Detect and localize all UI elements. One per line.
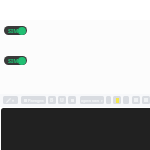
staticText: ▾ [101,99,103,102]
staticText: ▾ [12,98,15,103]
staticText: U [60,97,64,104]
button[interactable]: Align [132,96,140,104]
button[interactable]: Text size [106,96,111,104]
button[interactable]: Italic [68,96,76,104]
button[interactable]: Highlight [113,96,121,104]
staticText: SIM [8,57,19,64]
button[interactable]: List [142,96,150,104]
staticText: Paragra [28,98,44,103]
button[interactable]: Font [80,96,104,104]
button[interactable]: Text colour [123,96,129,104]
button[interactable]: SIM toggle [4,26,27,35]
staticText: open san [81,98,100,103]
button[interactable]: SIM toggle [4,56,27,65]
button[interactable]: Bold [48,96,56,104]
button[interactable]: Underline [58,96,66,104]
button[interactable]: Pen style [3,96,18,104]
button[interactable]: Paragraph style [21,96,46,104]
staticText: B [50,97,54,104]
staticText: SIM [8,27,19,34]
